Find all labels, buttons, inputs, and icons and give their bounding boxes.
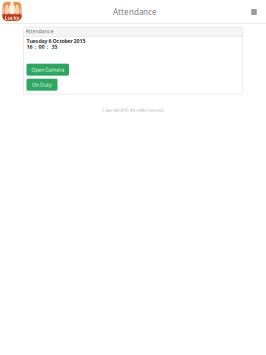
staticText: 16 : 00 : 35 bbox=[26, 43, 57, 50]
staticText: Copyright 2015. All rights reserved. bbox=[102, 107, 164, 112]
staticText: Open Camera bbox=[31, 66, 64, 73]
button[interactable]: Menu bbox=[247, 5, 260, 18]
staticText: On Duty bbox=[32, 81, 52, 88]
button[interactable]: Open Camera bbox=[26, 64, 69, 76]
staticText: Attendance bbox=[113, 7, 157, 17]
button[interactable]: Lucky — Home bbox=[0, 2, 21, 22]
staticText: Attendance bbox=[25, 28, 53, 35]
staticText: Lucky bbox=[4, 14, 19, 21]
staticText: Tuesday 6 October 2015 bbox=[26, 37, 85, 45]
button[interactable]: On Duty bbox=[26, 79, 57, 91]
